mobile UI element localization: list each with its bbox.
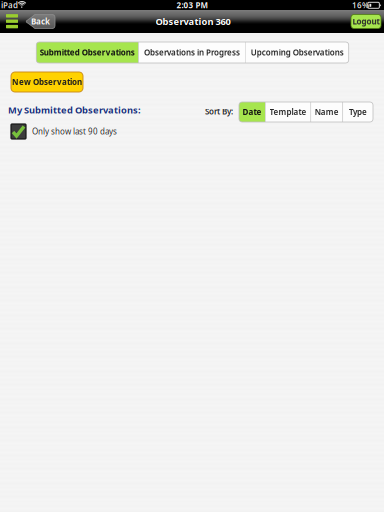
button[interactable]: Type — [343, 102, 373, 122]
button[interactable]: Only show last 90 days — [11, 124, 211, 139]
button[interactable]: Back — [26, 14, 55, 28]
button[interactable]: Date — [239, 102, 265, 122]
button[interactable]: Menu — [3, 11, 21, 31]
button[interactable]: Submitted Observations — [36, 42, 138, 63]
staticText: Back — [31, 16, 50, 27]
staticText: Submitted Observations — [40, 47, 135, 58]
staticText: Observations in Progress — [144, 47, 240, 58]
staticText: Upcoming Observations — [251, 47, 344, 58]
staticText: My Submitted Observations: — [8, 104, 141, 116]
button[interactable]: New Observation — [11, 72, 83, 92]
button[interactable]: Template — [266, 102, 310, 122]
staticText: Date — [242, 107, 261, 117]
staticText: New Observation — [12, 77, 82, 87]
staticText: Logout — [352, 16, 379, 27]
staticText: Type — [349, 107, 367, 117]
staticText: Observation 360 — [155, 15, 230, 28]
staticText: 16% — [352, 0, 369, 10]
staticText: Sort By: — [205, 106, 233, 117]
staticText: Name — [315, 107, 339, 117]
button[interactable]: Upcoming Observations — [246, 42, 349, 63]
staticText: Template — [270, 107, 307, 117]
button[interactable]: Logout — [351, 14, 381, 28]
button[interactable]: Name — [311, 102, 342, 122]
staticText: 2:03 PM — [176, 0, 208, 10]
button[interactable]: Observations in Progress — [139, 42, 245, 63]
staticText: iPad — [1, 0, 18, 10]
staticText: Only show last 90 days — [32, 126, 117, 137]
